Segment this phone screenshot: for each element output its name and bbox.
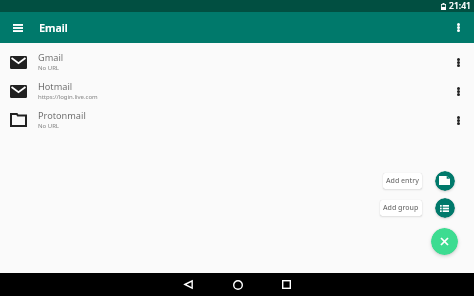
staticText: Add group <box>383 203 419 213</box>
button[interactable]: Add group <box>435 198 455 218</box>
button[interactable]: More options <box>443 12 474 43</box>
staticText: No URL <box>38 64 60 72</box>
staticText: Email <box>39 20 68 35</box>
staticText: Hotmail <box>38 80 73 93</box>
button[interactable]: Close <box>431 228 458 255</box>
button[interactable]: Protonmail <box>0 105 474 134</box>
button[interactable]: Gmail <box>0 47 474 76</box>
button[interactable]: Hotmail <box>0 76 474 105</box>
button[interactable]: Add entry <box>435 171 455 191</box>
staticText: Add entry <box>386 176 419 186</box>
button[interactable]: Options <box>442 77 474 105</box>
staticText: No URL <box>38 122 60 130</box>
staticText: https://login.live.com <box>38 93 98 101</box>
staticText: 21:41 <box>449 0 472 12</box>
button[interactable]: Add group <box>380 200 422 216</box>
button[interactable]: Add entry <box>383 173 422 189</box>
button[interactable]: Back <box>164 273 213 296</box>
button[interactable]: Home <box>213 273 262 296</box>
staticText: Protonmail <box>38 109 86 122</box>
staticText: Gmail <box>38 51 64 64</box>
button[interactable]: Recents <box>262 273 311 296</box>
button[interactable]: Menu <box>0 12 36 43</box>
button[interactable]: Options <box>442 48 474 76</box>
button[interactable]: Options <box>442 106 474 134</box>
